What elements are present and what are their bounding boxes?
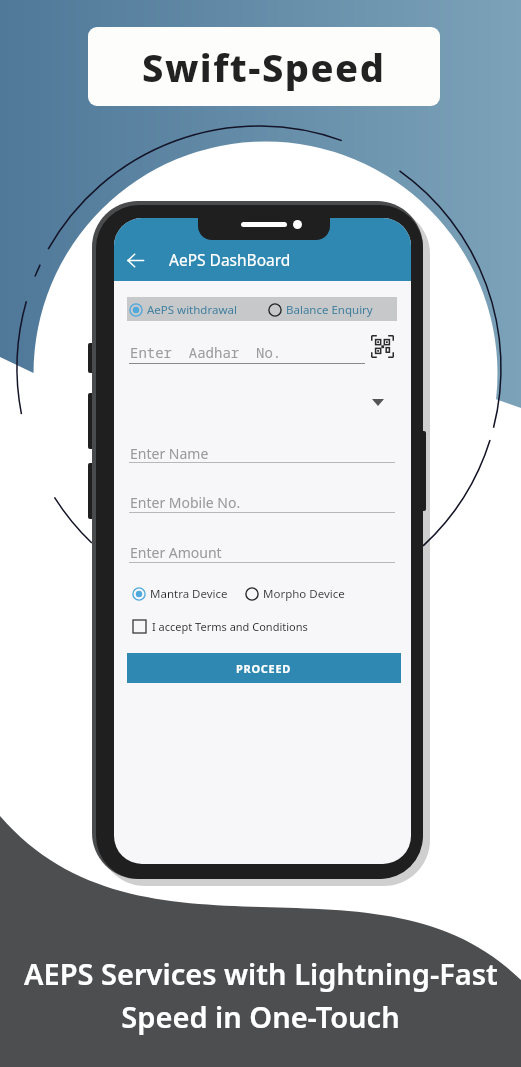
staticText: AePS DashBoard	[169, 249, 291, 270]
button[interactable]: Swift-Speed	[88, 27, 440, 106]
staticText: Speed in One-Touch	[121, 997, 400, 1036]
staticText: Enter Aadhar No.	[130, 343, 282, 362]
button[interactable]: Balance Enquiry	[268, 302, 373, 318]
staticText: Swift-Speed	[142, 41, 386, 93]
staticText: Balance Enquiry	[286, 302, 373, 318]
button[interactable]: Mantra Device	[132, 586, 228, 602]
staticText: Mantra Device	[150, 586, 228, 602]
button[interactable]: Back	[120, 245, 150, 275]
staticText: AEPS Services with Lightning-Fast	[24, 954, 498, 993]
button[interactable]: Morpho Device	[245, 586, 345, 602]
staticText: Enter Name	[130, 444, 209, 463]
staticText: I accept Terms and Conditions	[152, 619, 308, 634]
staticText: AePS withdrawal	[147, 302, 237, 318]
staticText: Morpho Device	[263, 586, 345, 602]
button[interactable]: I accept Terms and Conditions	[133, 619, 308, 634]
staticText: Enter Mobile No.	[130, 493, 241, 512]
button[interactable]: AePS withdrawal	[129, 302, 237, 318]
button[interactable]: PROCEED	[127, 653, 401, 683]
button[interactable]: Scan QR code	[365, 329, 400, 364]
staticText: PROCEED	[236, 661, 292, 676]
staticText: Enter Amount	[130, 543, 222, 562]
